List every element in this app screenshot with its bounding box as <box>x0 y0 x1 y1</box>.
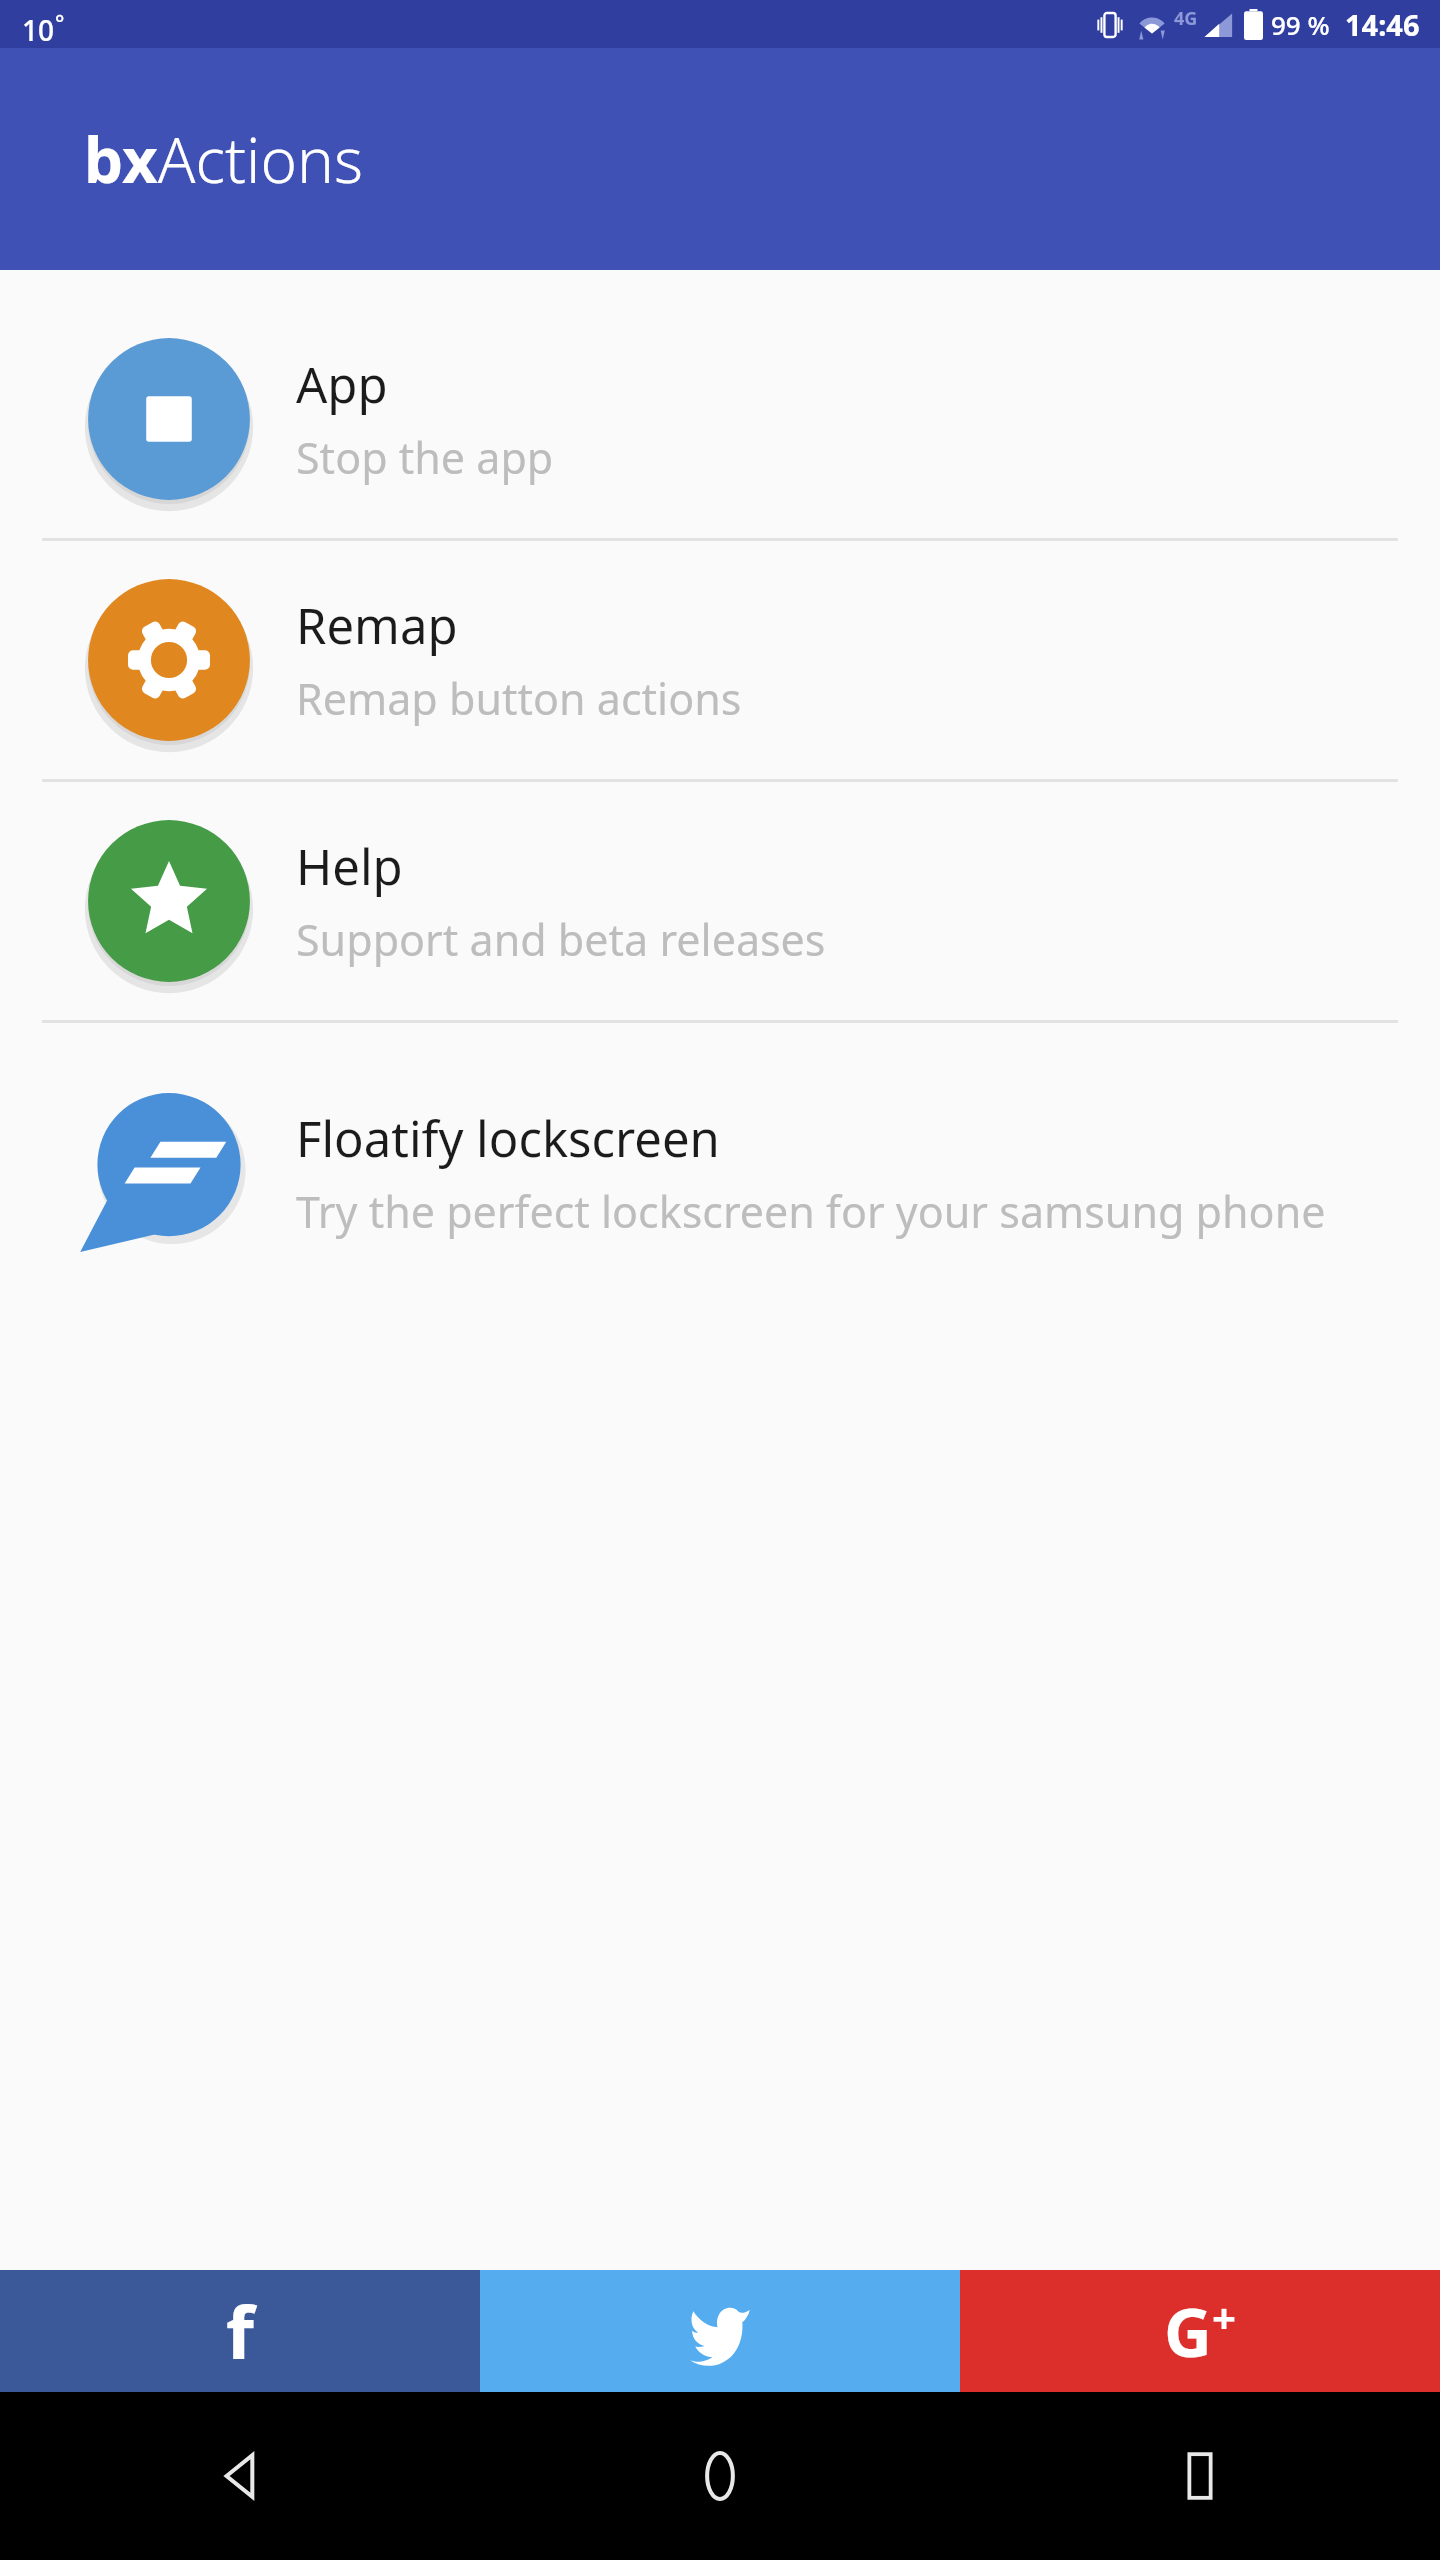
staticText: Stop the app <box>296 428 554 487</box>
staticText: bxActions <box>84 117 363 201</box>
button[interactable]: Recent apps <box>960 2392 1440 2560</box>
button[interactable]: Help <box>0 782 1440 1020</box>
staticText: 4G <box>1174 6 1198 31</box>
button[interactable]: Back <box>0 2392 480 2560</box>
staticText: f <box>226 2282 254 2380</box>
staticText: 10 <box>22 11 55 49</box>
button[interactable]: Home <box>480 2392 960 2560</box>
staticText: Support and beta releases <box>296 910 826 969</box>
button[interactable]: Google Plus <box>960 2270 1440 2392</box>
staticText: Floatify lockscreen <box>296 1105 720 1172</box>
staticText: G <box>1164 2286 1212 2376</box>
staticText: + <box>1212 2289 1237 2346</box>
staticText: 99 % <box>1271 7 1330 42</box>
staticText: 14:46 <box>1345 5 1420 44</box>
staticText: Remap <box>296 592 458 659</box>
button[interactable]: App <box>0 300 1440 538</box>
staticText: Remap button actions <box>296 669 742 728</box>
staticText: App <box>296 351 388 418</box>
button[interactable]: Twitter <box>480 2270 960 2392</box>
button[interactable]: Remap <box>0 541 1440 779</box>
button[interactable]: Floatify lockscreen <box>0 1023 1440 1323</box>
button[interactable]: Facebook <box>0 2270 480 2392</box>
staticText: Help <box>296 833 403 900</box>
staticText: Try the perfect lockscreen for your sams… <box>296 1182 1326 1241</box>
staticText: ° <box>55 7 65 37</box>
